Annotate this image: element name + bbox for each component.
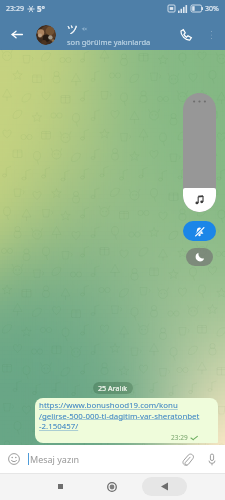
button[interactable]: Do not disturb: [186, 248, 213, 266]
staticText: https://www.bonushood19.com/konu /gelirs…: [39, 400, 200, 432]
button[interactable]: Recents: [40, 473, 80, 500]
button[interactable]: Profile photo: [36, 25, 56, 45]
button[interactable]: 25 Aralık: [98, 382, 128, 394]
button[interactable]: Call: [172, 19, 200, 50]
button[interactable]: ツ: [67, 22, 172, 47]
button[interactable]: Back: [0, 19, 36, 50]
button[interactable]: Home: [92, 473, 132, 500]
staticText: 25 Aralık: [98, 383, 128, 393]
button[interactable]: Mute: [183, 221, 216, 241]
button[interactable]: Emoji: [0, 445, 28, 473]
button[interactable]: Back: [142, 477, 187, 496]
staticText: 23:29: [6, 4, 24, 14]
button[interactable]: Voice message: [199, 445, 225, 473]
staticText: 5°: [37, 3, 45, 14]
staticText: ツ: [67, 22, 79, 36]
button[interactable]: Mesaj yazın: [28, 445, 175, 473]
staticText: son görülme yakınlarda: [67, 37, 151, 47]
button[interactable]: Attach: [175, 445, 199, 473]
button[interactable]: Volume slider: [183, 93, 216, 212]
staticText: Mesaj yazın: [30, 453, 80, 465]
staticText: 30%: [205, 4, 219, 14]
staticText: 23:29: [171, 433, 188, 442]
button[interactable]: https://www.bonushood19.com/konu /gelirs…: [35, 398, 218, 443]
